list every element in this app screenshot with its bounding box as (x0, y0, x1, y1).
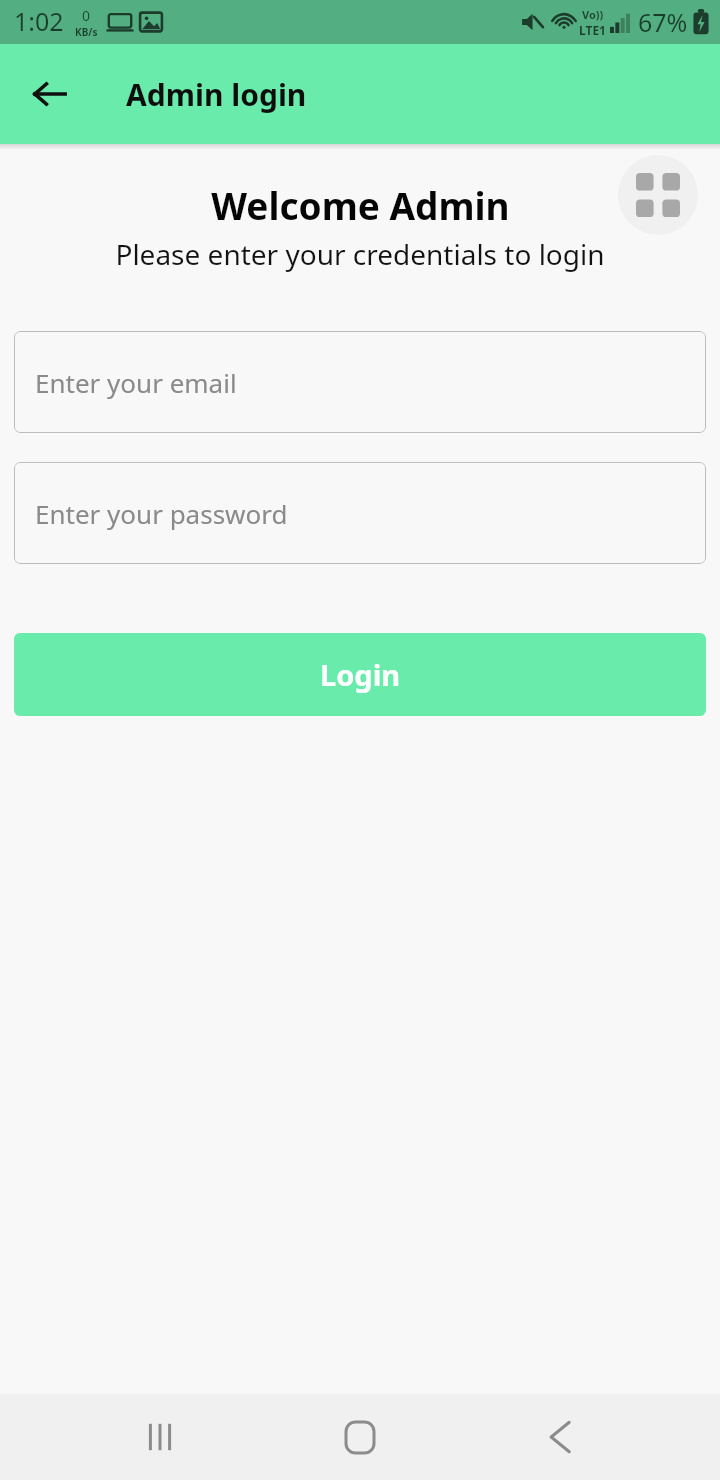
staticText: 0 (82, 6, 91, 25)
button[interactable]: Enter your email (14, 331, 706, 433)
staticText: 1:02 (14, 4, 64, 38)
staticText: Admin login (126, 74, 307, 115)
button[interactable]: Back (520, 1397, 600, 1477)
staticText: Vo)) (582, 7, 604, 22)
staticText: 67% (638, 5, 688, 39)
button[interactable]: Recent apps (120, 1397, 200, 1477)
staticText: LTE1 (579, 22, 606, 38)
staticText: Enter your password (35, 496, 288, 531)
button[interactable]: Apps (618, 155, 698, 235)
staticText: KB/s (75, 25, 98, 39)
button[interactable]: Login (14, 633, 706, 716)
button[interactable]: Back (16, 60, 84, 128)
staticText: Login (320, 655, 401, 694)
staticText: Welcome Admin (211, 180, 510, 230)
button[interactable]: Enter your password (14, 462, 706, 564)
button[interactable]: Home (320, 1397, 400, 1477)
staticText: Enter your email (35, 365, 237, 400)
staticText: Please enter your credentials to login (115, 235, 605, 273)
